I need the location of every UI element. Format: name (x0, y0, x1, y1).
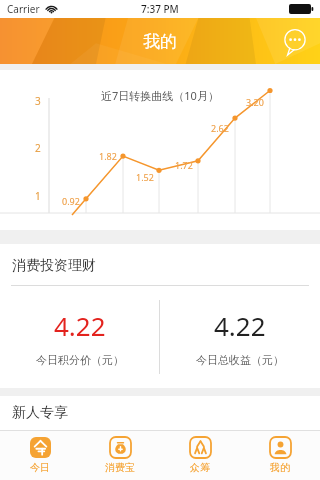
button[interactable]: 今日 (0, 431, 80, 480)
staticText: 4.22 (54, 308, 106, 343)
staticText: 我的 (143, 31, 177, 52)
button[interactable]: 众筹 (160, 431, 240, 480)
button[interactable]: Messages (278, 24, 312, 58)
staticText: 2.62 (211, 122, 229, 134)
staticText: 3 (35, 94, 41, 108)
staticText: 2 (35, 141, 41, 155)
staticText: 我的 (270, 461, 290, 474)
button[interactable]: 我的 (240, 431, 320, 480)
staticText: 7:37 PM (141, 2, 179, 16)
button[interactable]: 消费宝 (80, 431, 160, 480)
staticText: 1.82 (99, 150, 117, 162)
staticText: 消费投资理财 (12, 257, 96, 275)
button[interactable]: 4.22 (0, 286, 159, 388)
staticText: 众筹 (190, 461, 210, 474)
staticText: 新人专享 (12, 404, 68, 422)
staticText: Carrier (7, 2, 40, 16)
staticText: 1 (35, 189, 41, 203)
staticText: 0.92 (62, 195, 80, 207)
staticText: 1.72 (175, 159, 193, 171)
staticText: 消费宝 (105, 461, 135, 474)
staticText: 今日 (30, 461, 50, 474)
staticText: 近7日转换曲线（10月） (101, 88, 219, 103)
button[interactable]: 4.22 (160, 286, 320, 388)
staticText: 4.22 (214, 308, 266, 343)
staticText: 今日总收益（元） (196, 353, 284, 367)
staticText: 今日积分价（元） (36, 353, 124, 367)
staticText: 3.20 (246, 96, 264, 108)
staticText: 1.52 (136, 171, 154, 183)
